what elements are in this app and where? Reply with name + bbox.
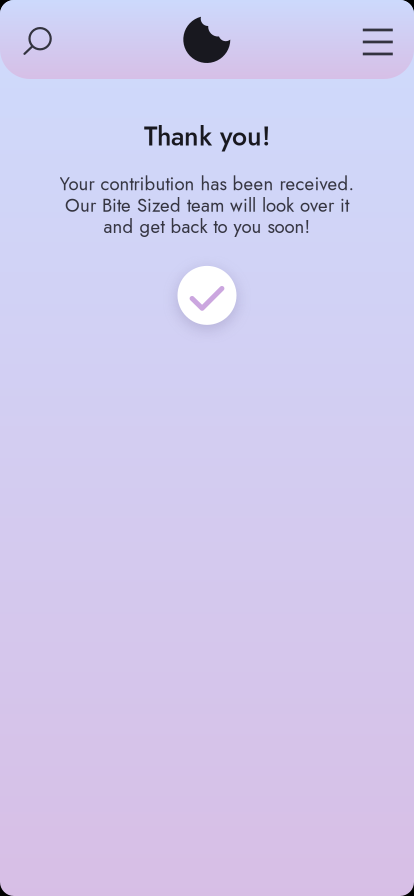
staticText: Our Bite Sized team will look over it — [65, 192, 349, 219]
button[interactable]: Search — [16, 15, 64, 63]
button[interactable]: Bite Sized home — [183, 15, 231, 63]
staticText: Thank you! — [144, 117, 270, 155]
staticText: Your contribution has been received. — [59, 170, 354, 197]
staticText: and get back to you soon! — [103, 213, 310, 240]
button[interactable]: Menu — [363, 29, 393, 55]
